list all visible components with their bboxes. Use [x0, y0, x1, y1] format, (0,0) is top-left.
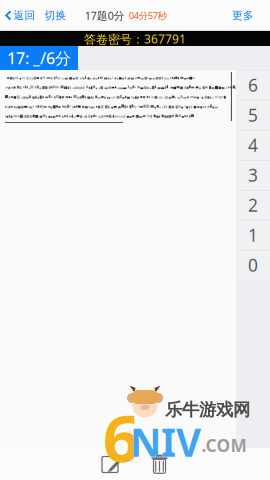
staticText: 17题0分 — [85, 8, 125, 23]
staticText: .COM — [201, 434, 246, 457]
staticText: 6 — [103, 395, 140, 480]
staticText: NIV — [130, 416, 201, 467]
staticText: 更多 — [232, 9, 254, 22]
staticText: 返回 — [13, 9, 35, 22]
staticText: 3 — [248, 163, 258, 186]
button[interactable]: 4 — [236, 130, 270, 160]
staticText: 6 — [248, 73, 258, 96]
staticText: 4 — [248, 133, 258, 156]
staticText: 5 — [248, 103, 258, 126]
button[interactable]: Delete — [137, 453, 182, 474]
button[interactable]: 切换 — [39, 0, 71, 31]
staticText: 切换 — [44, 9, 66, 22]
staticText: 04分57秒 — [129, 9, 167, 22]
staticText: 2 — [248, 193, 258, 216]
staticText: 0 — [248, 253, 258, 276]
button[interactable]: 更多 — [226, 0, 270, 31]
button[interactable]: 5 — [236, 100, 270, 130]
staticText: 1 — [248, 223, 258, 246]
button[interactable]: Annotate — [88, 453, 137, 474]
button[interactable]: 3 — [236, 160, 270, 190]
staticText: 17: _/6分 — [7, 47, 71, 69]
button[interactable]: 0 — [236, 250, 270, 280]
button[interactable]: 6 — [236, 70, 270, 100]
staticText: 乐牛游戏网 — [165, 399, 250, 420]
button[interactable]: 2 — [236, 190, 270, 220]
button[interactable]: 1 — [236, 220, 270, 250]
staticText: 答卷密号：367791 — [84, 31, 186, 47]
button[interactable]: 返回 — [0, 0, 39, 31]
